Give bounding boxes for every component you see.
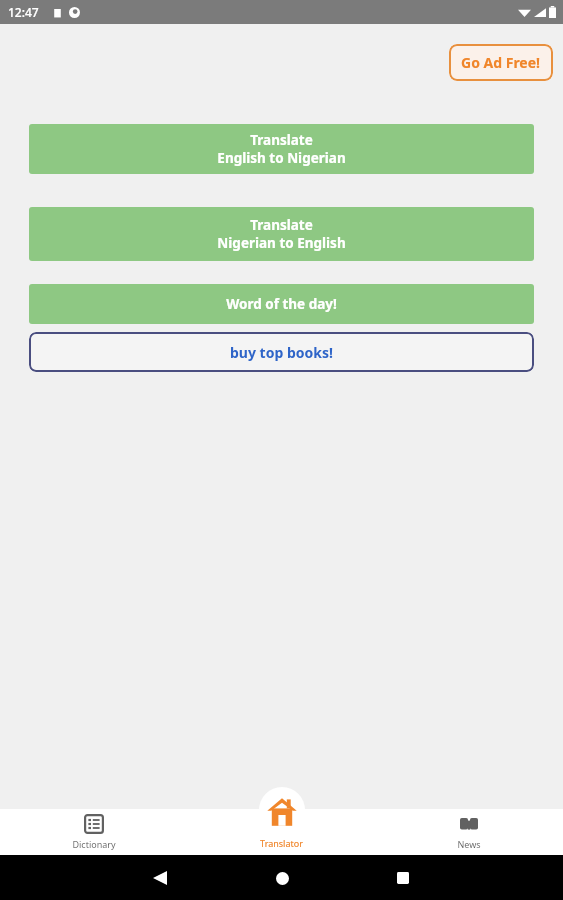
button[interactable]: Word of the day!: [29, 284, 534, 324]
staticText: Nigerian to English: [217, 234, 346, 252]
button[interactable]: News: [375, 809, 563, 855]
button[interactable]: Go Ad Free!: [449, 44, 553, 81]
staticText: Translate: [250, 216, 313, 234]
button[interactable]: Dictionary: [0, 809, 187, 855]
button[interactable]: Translator: [256, 787, 308, 833]
button[interactable]: Translate: [29, 124, 534, 174]
staticText: News: [457, 838, 481, 850]
staticText: Dictionary: [72, 838, 116, 850]
button[interactable]: buy top books!: [29, 332, 534, 372]
button[interactable]: Translate: [29, 207, 534, 261]
staticText: Translate: [250, 131, 313, 149]
button[interactable]: Back: [148, 866, 172, 890]
button[interactable]: Recent apps: [391, 866, 415, 890]
staticText: English to Nigerian: [217, 149, 346, 167]
button[interactable]: Translator: [187, 809, 375, 855]
staticText: Go Ad Free!: [461, 53, 541, 72]
staticText: 12:47: [8, 4, 39, 20]
button[interactable]: Home: [270, 866, 294, 890]
staticText: Translator: [260, 837, 303, 849]
staticText: Word of the day!: [226, 295, 337, 313]
staticText: buy top books!: [230, 343, 333, 362]
